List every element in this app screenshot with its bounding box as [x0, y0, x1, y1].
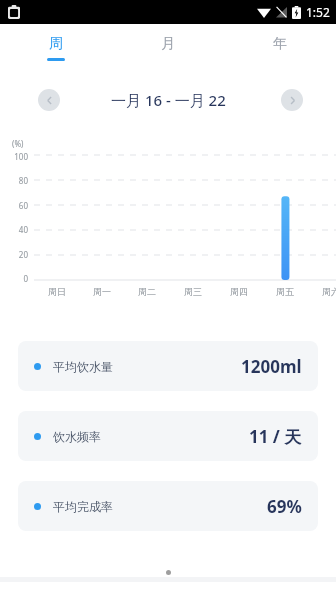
- staticText: 100: [14, 151, 28, 162]
- staticText: 周三: [184, 286, 202, 297]
- staticText: 20: [18, 249, 28, 260]
- button[interactable]: 周: [0, 24, 112, 72]
- staticText: 周四: [230, 286, 248, 297]
- staticText: 80: [18, 175, 28, 186]
- staticText: 0: [23, 273, 28, 284]
- staticText: 周六: [322, 286, 336, 297]
- staticText: (%): [12, 138, 24, 149]
- staticText: 周二: [138, 286, 156, 297]
- staticText: 年: [273, 35, 287, 53]
- button[interactable]: 月: [112, 24, 224, 72]
- button[interactable]: 平均完成率: [18, 481, 318, 531]
- staticText: 11 / 天: [249, 425, 302, 448]
- button[interactable]: Next week: [281, 89, 303, 111]
- staticText: 周: [49, 35, 63, 53]
- button[interactable]: 平均饮水量: [18, 341, 318, 391]
- staticText: 1200ml: [241, 355, 302, 378]
- staticText: 周日: [48, 286, 66, 297]
- staticText: 一月 16 - 一月 22: [111, 90, 226, 110]
- staticText: 69%: [267, 495, 302, 518]
- staticText: 60: [18, 200, 28, 211]
- button[interactable]: 年: [224, 24, 336, 72]
- staticText: 周五: [276, 286, 294, 297]
- button[interactable]: Previous week: [38, 89, 60, 111]
- staticText: 1:52: [306, 4, 330, 20]
- staticText: 平均完成率: [53, 499, 113, 514]
- staticText: 平均饮水量: [53, 359, 113, 374]
- staticText: 周一: [93, 286, 111, 297]
- staticText: 40: [18, 224, 28, 235]
- staticText: 饮水频率: [53, 429, 101, 444]
- button[interactable]: 饮水频率: [18, 411, 318, 461]
- staticText: 月: [161, 35, 175, 53]
